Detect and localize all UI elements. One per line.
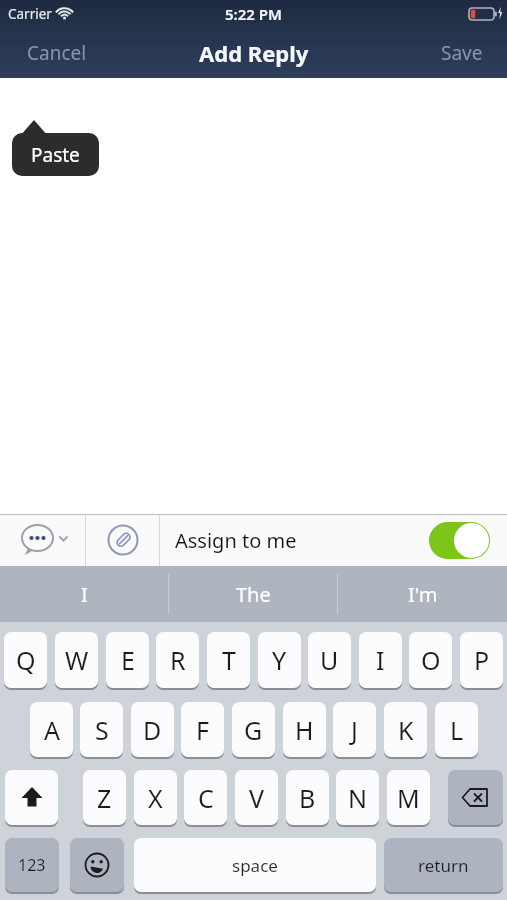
staticText: O <box>421 643 441 677</box>
button[interactable]: J <box>333 702 376 757</box>
staticText: W <box>65 643 89 677</box>
staticText: 123 <box>18 854 46 876</box>
button[interactable]: R <box>156 632 199 688</box>
staticText: Add Reply <box>199 38 309 68</box>
button[interactable] <box>5 770 58 825</box>
button[interactable]: H <box>283 702 326 757</box>
staticText: Z <box>97 781 112 815</box>
staticText: Y <box>272 643 287 677</box>
button[interactable]: S <box>80 702 123 757</box>
button[interactable]: C <box>184 770 227 825</box>
staticText: Save <box>441 40 483 66</box>
staticText: 5:22 PM <box>225 4 282 24</box>
button[interactable]: A <box>30 702 73 757</box>
button[interactable]: 123 <box>5 838 59 892</box>
button[interactable] <box>70 838 124 892</box>
staticText: D <box>143 713 162 747</box>
button[interactable] <box>0 514 85 566</box>
staticText: E <box>121 643 135 677</box>
staticText: Carrier <box>8 5 52 23</box>
staticText: I <box>376 643 385 677</box>
staticText: V <box>249 781 265 815</box>
button[interactable]: D <box>131 702 174 757</box>
button[interactable]: K <box>384 702 427 757</box>
button[interactable]: N <box>336 770 379 825</box>
button[interactable]: I <box>0 566 168 622</box>
staticText: S <box>95 713 109 747</box>
button[interactable]: I'm <box>338 566 507 622</box>
staticText: Cancel <box>27 40 87 66</box>
staticText: Assign to me <box>175 527 297 554</box>
button[interactable]: T <box>207 632 250 688</box>
button[interactable] <box>448 770 503 825</box>
button[interactable]: Paste <box>12 133 99 176</box>
staticText: J <box>351 713 358 747</box>
button[interactable]: G <box>232 702 275 757</box>
button[interactable]: X <box>134 770 177 825</box>
staticText: I'm <box>408 581 438 608</box>
button[interactable]: The <box>169 566 337 622</box>
button[interactable]: L <box>435 702 478 757</box>
button[interactable]: return <box>384 838 503 892</box>
button[interactable]: V <box>235 770 278 825</box>
button[interactable] <box>429 522 490 559</box>
staticText: M <box>397 781 420 815</box>
staticText: L <box>450 713 464 747</box>
staticText: T <box>222 643 236 677</box>
staticText: I <box>81 581 88 608</box>
button[interactable]: Z <box>83 770 126 825</box>
staticText: F <box>196 713 209 747</box>
button[interactable]: P <box>460 632 503 688</box>
button[interactable] <box>86 514 159 566</box>
staticText: X <box>148 781 163 815</box>
button[interactable]: E <box>106 632 149 688</box>
button[interactable]: W <box>55 632 98 688</box>
staticText: space <box>232 854 278 877</box>
staticText: P <box>474 643 490 677</box>
staticText: C <box>198 781 214 815</box>
staticText: return <box>418 854 469 877</box>
staticText: N <box>348 781 368 815</box>
staticText: G <box>244 713 263 747</box>
staticText: Paste <box>31 142 80 168</box>
button[interactable]: B <box>286 770 329 825</box>
button[interactable]: Q <box>4 632 47 688</box>
button[interactable]: Y <box>258 632 301 688</box>
button[interactable]: Cancel <box>27 40 87 66</box>
staticText: H <box>295 713 314 747</box>
staticText: B <box>299 781 316 815</box>
staticText: A <box>44 713 60 747</box>
button[interactable]: O <box>409 632 452 688</box>
button[interactable]: I <box>359 632 402 688</box>
button[interactable]: F <box>181 702 224 757</box>
button[interactable]: M <box>387 770 430 825</box>
button[interactable]: U <box>308 632 351 688</box>
staticText: U <box>320 643 339 677</box>
staticText: K <box>398 713 414 747</box>
button[interactable]: Save <box>441 40 483 66</box>
button[interactable]: space <box>134 838 376 892</box>
staticText: R <box>170 643 186 677</box>
button[interactable]: Assign to me <box>160 514 507 566</box>
staticText: The <box>236 581 271 608</box>
staticText: Q <box>16 643 36 677</box>
